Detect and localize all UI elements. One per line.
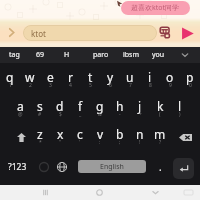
button[interactable]: Home bbox=[89, 185, 109, 200]
staticText: z bbox=[37, 126, 43, 142]
staticText: u bbox=[126, 69, 134, 85]
button[interactable]: i bbox=[140, 63, 160, 93]
staticText: 4 bbox=[69, 82, 72, 89]
button[interactable]: q bbox=[0, 63, 20, 93]
button[interactable]: Expand bbox=[2, 23, 20, 41]
staticText: x bbox=[57, 126, 64, 142]
staticText: o bbox=[166, 69, 174, 85]
button[interactable]: Recents bbox=[35, 185, 55, 200]
button[interactable]: Emoji bbox=[30, 153, 58, 181]
staticText: g bbox=[96, 98, 104, 114]
staticText: 5 bbox=[89, 82, 92, 89]
staticText: you bbox=[152, 50, 165, 60]
button[interactable]: c bbox=[70, 120, 90, 150]
button[interactable]: k bbox=[150, 92, 170, 122]
button[interactable]: g bbox=[90, 92, 110, 122]
staticText: e bbox=[47, 69, 54, 85]
staticText: j bbox=[138, 98, 142, 114]
staticText: k bbox=[157, 98, 164, 114]
button[interactable]: ktot bbox=[23, 25, 157, 41]
staticText: ktot bbox=[31, 28, 46, 39]
button[interactable]: y bbox=[100, 63, 120, 93]
button[interactable]: Keyboard bbox=[180, 185, 196, 200]
button[interactable]: z bbox=[30, 120, 50, 150]
button[interactable]: t bbox=[80, 63, 100, 93]
staticText: i bbox=[148, 69, 152, 85]
button[interactable]: 69 bbox=[27, 47, 53, 63]
staticText: w bbox=[25, 69, 35, 85]
staticText: paro bbox=[93, 50, 109, 60]
staticText: r bbox=[68, 69, 73, 85]
staticText: t bbox=[88, 69, 93, 85]
staticText: p bbox=[186, 69, 194, 85]
button[interactable]: w bbox=[20, 63, 40, 93]
button[interactable]: j bbox=[130, 92, 150, 122]
button[interactable]: l bbox=[170, 92, 190, 122]
staticText: # bbox=[38, 111, 42, 118]
staticText: ibsm bbox=[123, 50, 140, 60]
staticText: h bbox=[116, 98, 124, 114]
staticText: + bbox=[139, 111, 142, 118]
button[interactable]: o bbox=[160, 63, 180, 93]
staticText: tag bbox=[9, 50, 20, 60]
button[interactable]: tag bbox=[1, 47, 27, 63]
staticText: 超喜欢ktot同学 bbox=[131, 3, 180, 13]
button[interactable]: x bbox=[50, 120, 70, 150]
button[interactable]: Change language bbox=[48, 153, 76, 181]
button[interactable]: u bbox=[120, 63, 140, 93]
staticText: 1 bbox=[9, 82, 12, 89]
staticText: ! bbox=[139, 139, 141, 146]
staticText: 3 bbox=[49, 82, 52, 89]
button[interactable]: More suggestions bbox=[176, 47, 194, 63]
staticText: s bbox=[37, 98, 43, 114]
staticText: ) bbox=[179, 111, 181, 118]
staticText: v bbox=[97, 126, 104, 142]
staticText: f bbox=[78, 98, 83, 114]
button[interactable]: h bbox=[110, 92, 130, 122]
button[interactable]: English bbox=[78, 160, 146, 173]
button[interactable]: paro bbox=[88, 47, 114, 63]
staticText: b bbox=[116, 126, 124, 142]
staticText: 8 bbox=[149, 82, 152, 89]
button[interactable]: 超喜欢ktot同学 bbox=[121, 1, 190, 15]
button[interactable]: r bbox=[60, 63, 80, 93]
staticText: 69 bbox=[36, 50, 45, 60]
staticText: @ bbox=[18, 111, 23, 118]
staticText: ? bbox=[159, 139, 162, 146]
button[interactable]: v bbox=[90, 120, 110, 150]
staticText: q bbox=[6, 69, 14, 85]
staticText: English bbox=[100, 162, 124, 172]
button[interactable]: b bbox=[110, 120, 130, 150]
staticText: 0 bbox=[189, 82, 192, 89]
button[interactable]: e bbox=[40, 63, 60, 93]
staticText: 2 bbox=[29, 82, 32, 89]
button[interactable]: Sticker bbox=[158, 25, 173, 40]
button[interactable]: Shift bbox=[6, 122, 36, 152]
staticText: c bbox=[77, 126, 83, 142]
button[interactable]: p bbox=[180, 63, 200, 93]
staticText: ( bbox=[159, 111, 161, 118]
staticText: . bbox=[159, 160, 162, 174]
button[interactable]: Backspace bbox=[170, 122, 200, 152]
button[interactable]: Enter bbox=[173, 158, 194, 179]
button[interactable]: m bbox=[150, 120, 170, 150]
staticText: y bbox=[107, 69, 114, 85]
staticText: _ bbox=[79, 111, 82, 118]
button[interactable]: Back bbox=[145, 185, 165, 200]
button[interactable]: d bbox=[50, 92, 70, 122]
button[interactable]: Send bbox=[180, 26, 195, 41]
button[interactable]: a bbox=[10, 92, 30, 122]
staticText: " bbox=[59, 139, 62, 146]
staticText: 9 bbox=[169, 82, 172, 89]
staticText: 6 bbox=[109, 82, 112, 89]
button[interactable]: ibsm bbox=[118, 47, 144, 63]
staticText: * bbox=[39, 139, 42, 146]
button[interactable]: you bbox=[145, 47, 171, 63]
button[interactable]: n bbox=[130, 120, 150, 150]
button[interactable]: s bbox=[30, 92, 50, 122]
button[interactable]: f bbox=[70, 92, 90, 122]
button[interactable]: ?123 bbox=[2, 153, 32, 181]
staticText: ; bbox=[119, 139, 121, 146]
button[interactable]: H bbox=[54, 47, 80, 63]
button[interactable]: . bbox=[148, 153, 172, 181]
